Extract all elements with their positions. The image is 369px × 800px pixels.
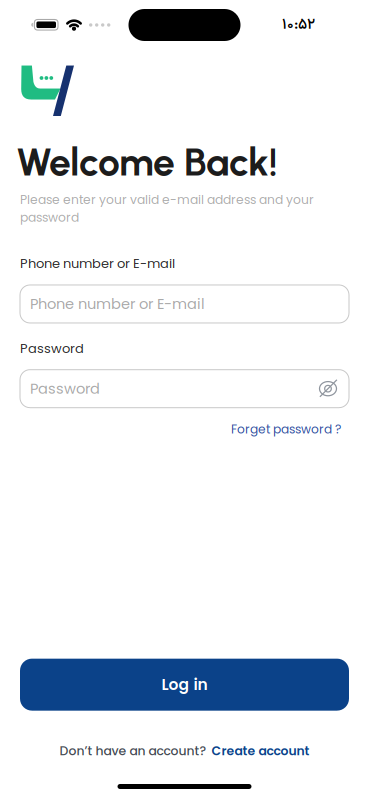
staticText: Password [30,378,100,399]
staticText: Forget password ? [231,421,341,438]
staticText: Create account [211,742,309,759]
staticText: Don’t have an account? [59,742,206,759]
staticText: ۱۰:۵۲ [282,13,315,37]
staticText: Phone number or E-mail [30,294,205,314]
staticText: Password [20,339,84,358]
staticText: Phone number or E-mail [20,254,175,272]
staticText: Please enter your valid e-mail address a… [20,191,314,226]
staticText: Log in [161,674,207,695]
staticText: Welcome Back! [16,138,278,185]
